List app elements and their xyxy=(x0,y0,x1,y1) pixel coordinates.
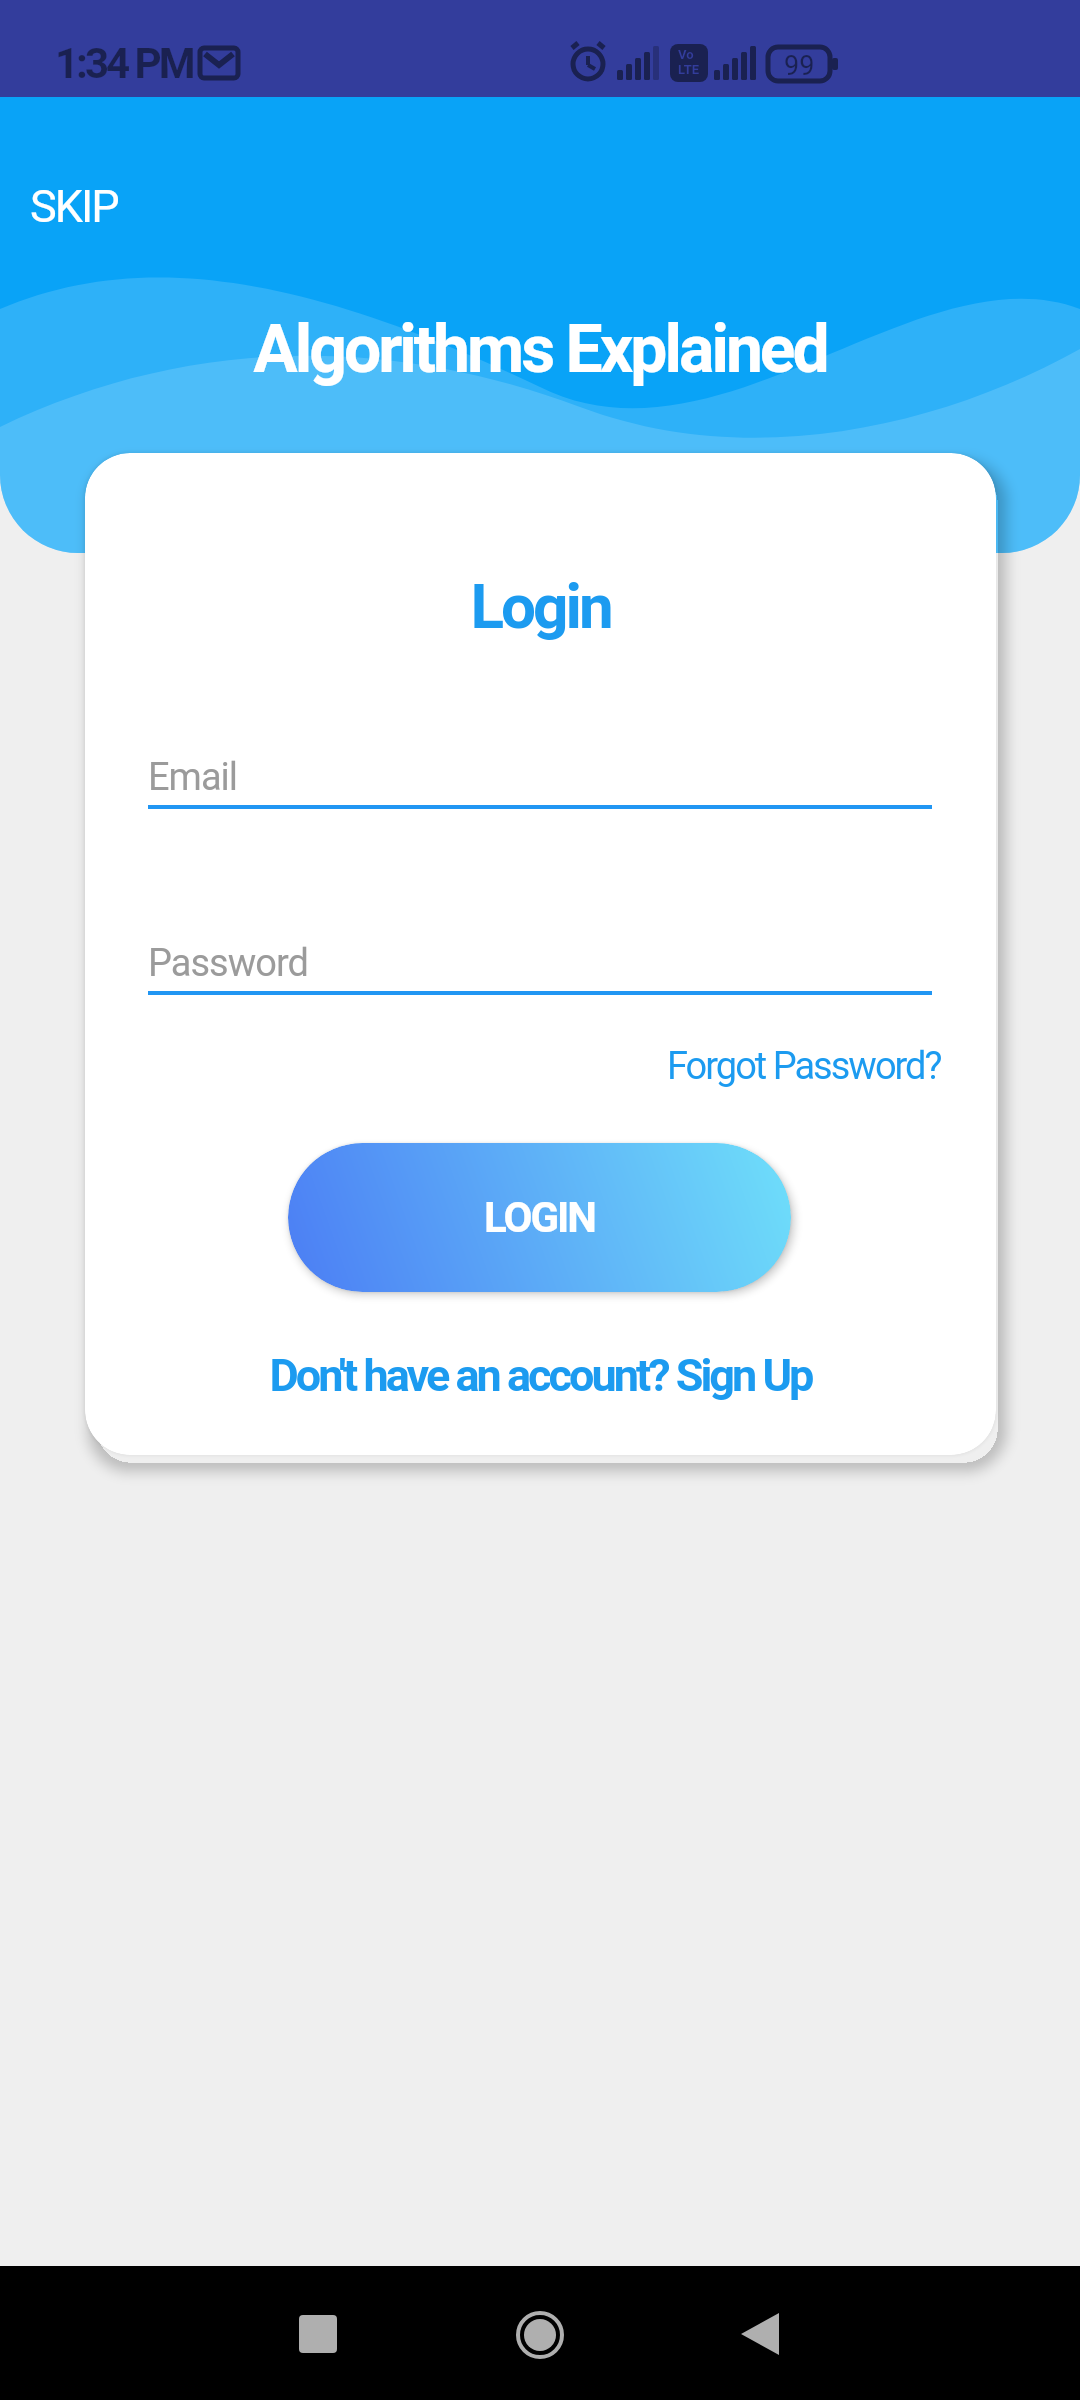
button[interactable]: LOGIN xyxy=(288,1143,791,1292)
button[interactable] xyxy=(470,2286,610,2386)
button[interactable]: Don't have an account? Sign Up xyxy=(85,1349,996,1402)
staticText: Login xyxy=(85,570,996,643)
button[interactable] xyxy=(690,2286,830,2386)
button[interactable]: Forgot Password? xyxy=(667,1044,941,1089)
staticText: Vo LTE xyxy=(678,47,700,77)
staticText: LOGIN xyxy=(484,1193,595,1242)
staticText: 1:34 PM xyxy=(55,39,193,88)
staticText: SKIP xyxy=(30,180,118,233)
staticText: Don't have an account? Sign Up xyxy=(85,1349,996,1402)
staticText: Forgot Password? xyxy=(667,1044,941,1089)
staticText: 99 xyxy=(784,50,815,82)
staticText: Email xyxy=(148,755,238,800)
button[interactable] xyxy=(250,2286,390,2386)
button[interactable]: SKIP xyxy=(10,160,150,240)
staticText: Password xyxy=(148,941,308,986)
staticText: Algorithms Explained xyxy=(0,311,1080,388)
